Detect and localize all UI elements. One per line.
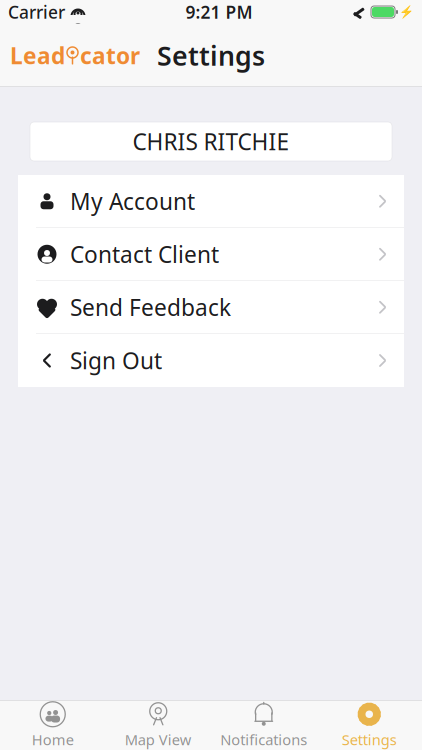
staticText: Contact Client (70, 239, 219, 269)
staticText: My Account (70, 186, 195, 216)
staticText: Notifications (220, 730, 307, 749)
button[interactable]: Settings (316, 700, 422, 749)
button[interactable]: Sign Out (18, 334, 404, 387)
staticText: Lead (10, 40, 65, 70)
button[interactable]: Home (0, 700, 105, 749)
staticText: Carrier (8, 0, 65, 23)
button[interactable]: Map View (105, 700, 211, 749)
button[interactable]: CHRIS RITCHIE (30, 122, 392, 161)
staticText: cator (80, 40, 140, 70)
button[interactable]: Notifications (211, 700, 316, 749)
staticText: ⚡ (399, 5, 414, 19)
staticText: Home (32, 730, 74, 749)
staticText: Settings (157, 38, 265, 73)
staticText: Send Feedback (70, 292, 231, 322)
button[interactable]: Contact Client (18, 228, 404, 281)
staticText: CHRIS RITCHIE (132, 126, 289, 156)
staticText: Settings (342, 730, 397, 749)
staticText: Map View (125, 730, 192, 749)
button[interactable]: Send Feedback (18, 281, 404, 334)
staticText: 9:21 PM (185, 0, 252, 23)
staticText: Sign Out (70, 345, 162, 375)
button[interactable]: My Account (18, 175, 404, 228)
